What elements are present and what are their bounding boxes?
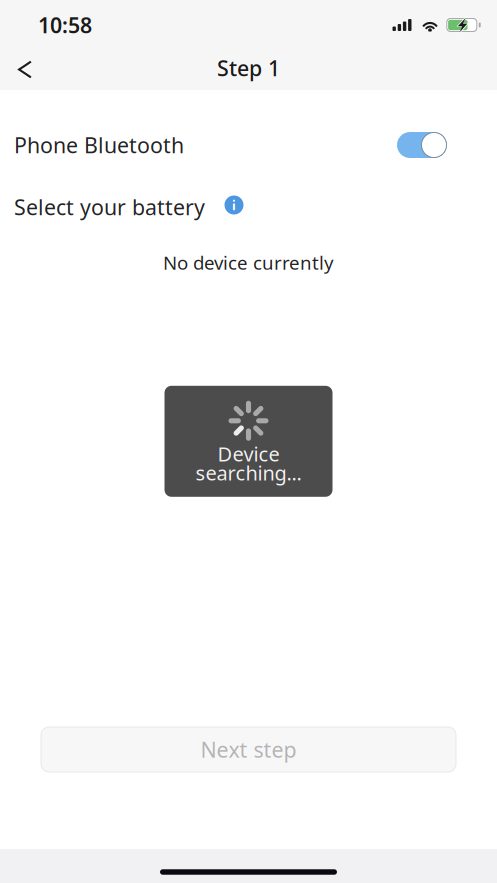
staticText: Next step bbox=[200, 735, 296, 764]
staticText: Device bbox=[217, 440, 279, 467]
staticText: searching... bbox=[195, 459, 301, 486]
button[interactable]: Next step bbox=[41, 727, 456, 772]
staticText: No device currently bbox=[163, 250, 334, 275]
staticText: Step 1 bbox=[217, 54, 280, 82]
staticText: 10:58 bbox=[38, 11, 92, 39]
button[interactable]: Information bbox=[205, 195, 244, 218]
staticText: Select your battery bbox=[14, 193, 205, 221]
staticText: Phone Bluetooth bbox=[14, 131, 184, 159]
button[interactable]: Phone Bluetooth bbox=[397, 132, 447, 158]
button[interactable]: Back bbox=[3, 47, 47, 91]
